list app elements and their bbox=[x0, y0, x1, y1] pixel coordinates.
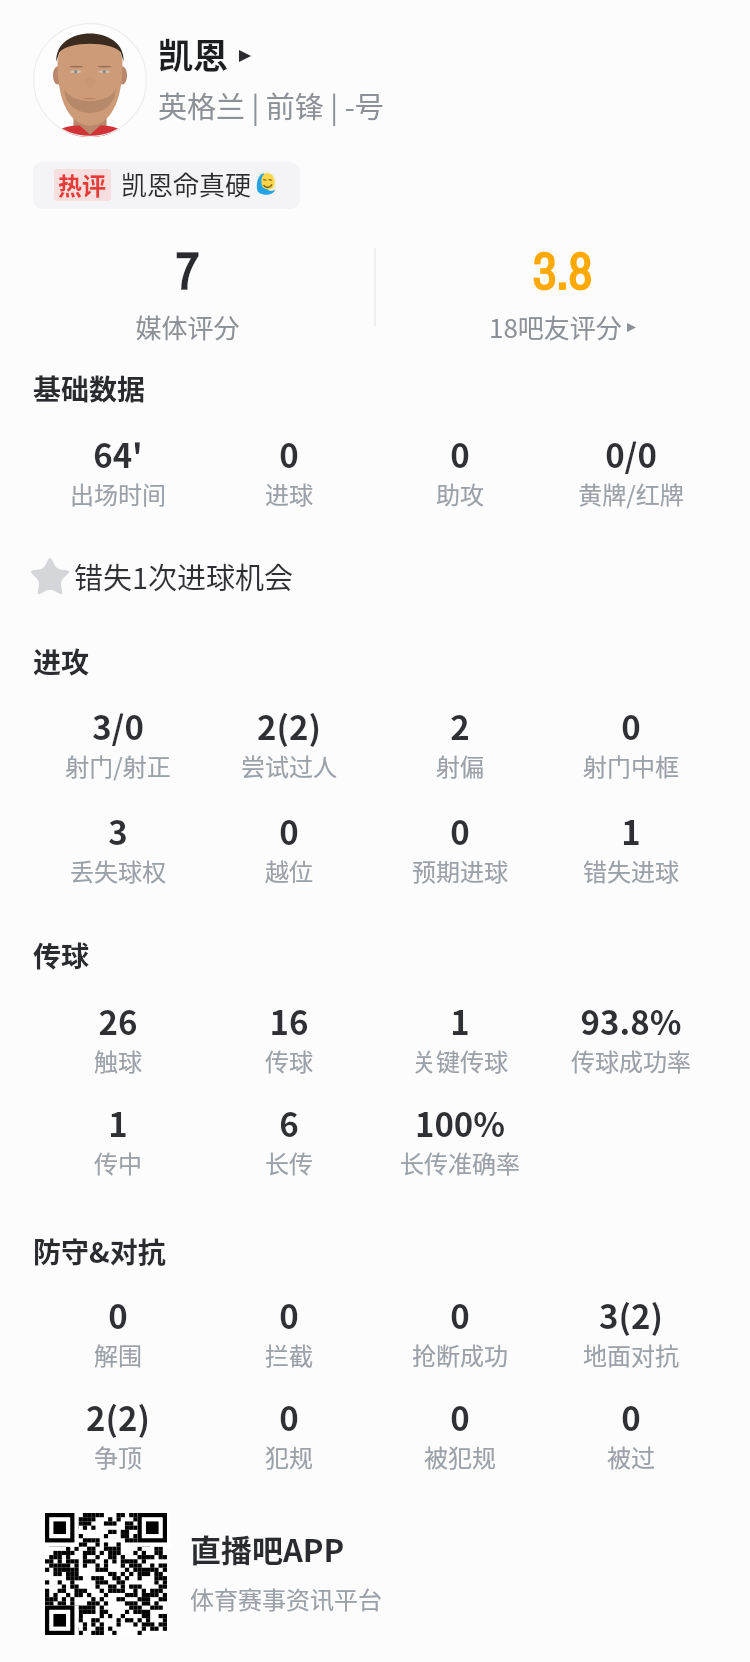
staticText: 助攻 bbox=[370, 476, 550, 511]
staticText: 尝试过人 bbox=[199, 748, 379, 783]
staticText: 0 bbox=[199, 1393, 379, 1441]
staticText: 体育赛事资讯平台 bbox=[190, 1581, 382, 1616]
staticText: 被过 bbox=[541, 1439, 721, 1474]
staticText: 错失进球 bbox=[541, 853, 721, 888]
staticText: 0 bbox=[199, 807, 379, 855]
button[interactable]: 3.8 bbox=[375, 235, 750, 305]
staticText: 6 bbox=[199, 1099, 379, 1147]
staticText: 100% bbox=[370, 1099, 550, 1147]
staticText: 进攻 bbox=[33, 641, 90, 682]
staticText: 1 bbox=[541, 807, 721, 855]
staticText: 18吧友评分 bbox=[489, 308, 622, 346]
staticText: 解围 bbox=[28, 1337, 208, 1372]
staticText: 媒体评分 bbox=[0, 308, 375, 346]
staticText: 射门中框 bbox=[541, 748, 721, 783]
staticText: 传球 bbox=[199, 1043, 379, 1078]
staticText: 争顶 bbox=[28, 1439, 208, 1474]
staticText: 热评 bbox=[58, 167, 106, 202]
staticText: 长传准确率 bbox=[370, 1145, 550, 1180]
staticText: 犯规 bbox=[199, 1439, 379, 1474]
staticText: 传球 bbox=[33, 935, 90, 976]
staticText: 3(2) bbox=[541, 1291, 721, 1339]
staticText: 射偏 bbox=[370, 748, 550, 783]
staticText: 26 bbox=[28, 997, 208, 1045]
staticText: 2(2) bbox=[199, 702, 379, 750]
staticText: 传球成功率 bbox=[541, 1043, 721, 1078]
button[interactable]: 7 bbox=[0, 235, 375, 305]
staticText: 丢失球权 bbox=[28, 853, 208, 888]
staticText: 凯恩命真硬 bbox=[121, 165, 252, 203]
staticText: 3/0 bbox=[28, 702, 208, 750]
button[interactable]: 错失1次进球机会 bbox=[28, 554, 294, 598]
staticText: 关键传球 bbox=[370, 1043, 550, 1078]
staticText: 进球 bbox=[199, 476, 379, 511]
staticText: 触球 bbox=[28, 1043, 208, 1078]
staticText: 拦截 bbox=[199, 1337, 379, 1372]
button[interactable]: 扫码下载直播吧APP bbox=[45, 1513, 167, 1635]
button[interactable]: 凯恩 bbox=[158, 28, 251, 79]
staticText: 1 bbox=[370, 997, 550, 1045]
staticText: 英格兰 | 前锋 | -号 bbox=[158, 84, 384, 126]
staticText: 93.8% bbox=[541, 997, 721, 1045]
staticText: 2 bbox=[370, 702, 550, 750]
staticText: 预期进球 bbox=[370, 853, 550, 888]
staticText: 抢断成功 bbox=[370, 1337, 550, 1372]
staticText: 长传 bbox=[199, 1145, 379, 1180]
staticText: 防守&对抗 bbox=[33, 1231, 166, 1272]
staticText: 错失1次进球机会 bbox=[74, 555, 294, 597]
staticText: 传中 bbox=[28, 1145, 208, 1180]
staticText: 出场时间 bbox=[28, 476, 208, 511]
staticText: 3.8 bbox=[375, 235, 750, 305]
staticText: 0 bbox=[199, 1291, 379, 1339]
staticText: 0 bbox=[541, 1393, 721, 1441]
staticText: 射门/射正 bbox=[28, 748, 208, 783]
staticText: 0 bbox=[28, 1291, 208, 1339]
staticText: 2(2) bbox=[28, 1393, 208, 1441]
staticText: 64' bbox=[28, 430, 208, 478]
staticText: 0 bbox=[370, 1393, 550, 1441]
staticText: 1 bbox=[28, 1099, 208, 1147]
staticText: 7 bbox=[0, 235, 375, 305]
staticText: 越位 bbox=[199, 853, 379, 888]
staticText: 被犯规 bbox=[370, 1439, 550, 1474]
staticText: 0 bbox=[370, 1291, 550, 1339]
staticText: 黄牌/红牌 bbox=[541, 476, 721, 511]
staticText: 3 bbox=[28, 807, 208, 855]
staticText: 0 bbox=[370, 807, 550, 855]
staticText: 0 bbox=[541, 702, 721, 750]
staticText: 0/0 bbox=[541, 430, 721, 478]
staticText: 0 bbox=[199, 430, 379, 478]
staticText: 0 bbox=[370, 430, 550, 478]
staticText: 地面对抗 bbox=[541, 1337, 721, 1372]
staticText: 凯恩 bbox=[158, 28, 229, 79]
staticText: 16 bbox=[199, 997, 379, 1045]
staticText: 直播吧APP bbox=[190, 1526, 345, 1571]
button[interactable]: Player avatar bbox=[33, 23, 147, 137]
button[interactable]: 热评 bbox=[33, 162, 300, 209]
staticText: 基础数据 bbox=[33, 368, 146, 409]
